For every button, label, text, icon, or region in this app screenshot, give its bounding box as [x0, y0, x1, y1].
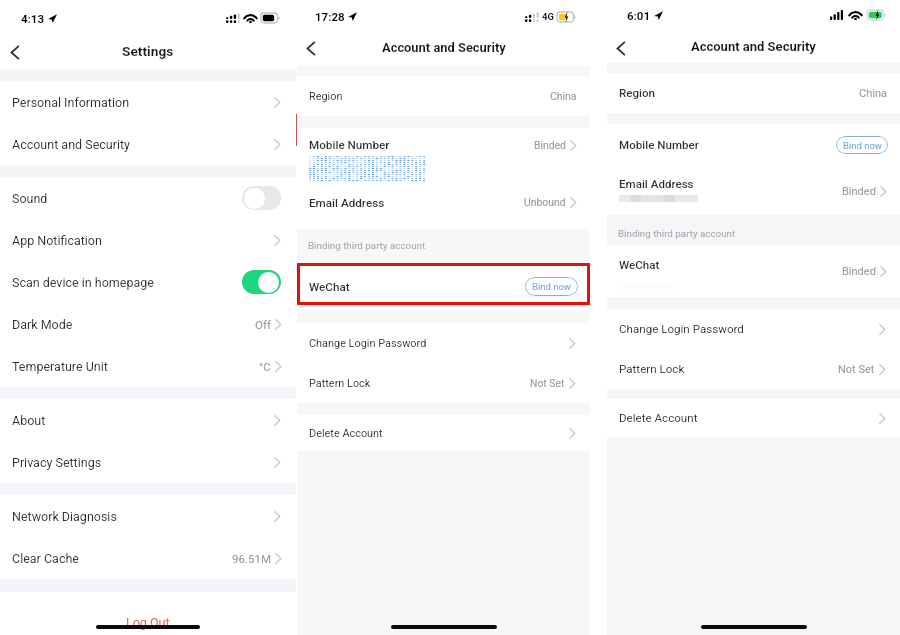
- staticText: Account and Security: [691, 39, 816, 54]
- button[interactable]: Network Diagnosis: [0, 495, 296, 537]
- button[interactable]: Region: [297, 76, 590, 116]
- staticText: °C: [259, 360, 271, 373]
- button[interactable]: Delete Account: [607, 399, 900, 437]
- button[interactable]: Delete Account: [297, 415, 590, 451]
- staticText: Pattern Lock: [309, 377, 371, 390]
- staticText: Email Address: [619, 177, 694, 191]
- staticText: Temperature Unit: [12, 359, 108, 374]
- button[interactable]: App Notification: [0, 219, 296, 261]
- staticText: 4:13: [21, 12, 45, 25]
- staticText: 4G: [542, 11, 554, 22]
- button[interactable]: Clear Cache: [0, 537, 296, 579]
- staticText: Region: [619, 86, 656, 100]
- button[interactable]: Log Out: [118, 612, 178, 633]
- staticText: Change Login Password: [619, 322, 744, 336]
- staticText: Pattern Lock: [619, 362, 685, 376]
- staticText: Binding third party account: [308, 240, 426, 251]
- button[interactable]: About: [0, 399, 296, 441]
- staticText: Binded: [842, 185, 876, 198]
- staticText: Region: [309, 90, 343, 103]
- button[interactable]: Bind now: [836, 136, 888, 154]
- staticText: Privacy Settings: [12, 455, 102, 470]
- button[interactable]: Back: [298, 35, 324, 61]
- staticText: Account and Security: [12, 137, 130, 152]
- button[interactable]: Change Login Password: [607, 309, 900, 349]
- staticText: App Notification: [12, 233, 102, 248]
- staticText: Bind now: [843, 140, 882, 151]
- staticText: Not Set: [530, 377, 565, 389]
- staticText: Binded: [534, 139, 566, 151]
- button[interactable]: Mobile Number: [607, 124, 900, 165]
- staticText: Not Set: [838, 363, 875, 376]
- staticText: Unbound: [524, 196, 566, 208]
- staticText: Off: [255, 318, 271, 331]
- staticText: Account and Security: [382, 40, 506, 55]
- staticText: Bind now: [532, 281, 571, 292]
- button[interactable]: Email Address: [607, 165, 900, 215]
- staticText: Delete Account: [619, 411, 698, 425]
- staticText: 17:28: [315, 10, 345, 23]
- button[interactable]: Dark Mode: [0, 303, 296, 345]
- staticText: 96.51M: [232, 552, 271, 565]
- button[interactable]: Account and Security: [0, 123, 296, 165]
- staticText: Log Out: [126, 615, 170, 630]
- staticText: Sound: [12, 191, 48, 206]
- staticText: China: [859, 87, 887, 100]
- staticText: Binded: [842, 265, 876, 278]
- button[interactable]: Personal Information: [0, 81, 296, 123]
- button[interactable]: Switch on: [242, 270, 281, 294]
- staticText: Personal Information: [12, 95, 130, 110]
- button[interactable]: Back: [2, 39, 28, 65]
- staticText: Mobile Number: [309, 138, 390, 152]
- staticText: Dark Mode: [12, 317, 73, 332]
- staticText: Network Diagnosis: [12, 509, 117, 524]
- button[interactable]: WeChat: [297, 262, 590, 311]
- staticText: Delete Account: [309, 427, 383, 440]
- button[interactable]: Bind now: [525, 277, 578, 296]
- button[interactable]: Back: [608, 35, 634, 61]
- staticText: 6:01: [627, 9, 651, 22]
- button[interactable]: Mobile Number: [297, 128, 590, 183]
- staticText: About: [12, 413, 46, 428]
- button[interactable]: Privacy Settings: [0, 441, 296, 483]
- staticText: WeChat: [619, 258, 660, 272]
- staticText: Clear Cache: [12, 551, 79, 566]
- button[interactable]: Switch off: [242, 186, 281, 210]
- staticText: China: [550, 90, 577, 102]
- button[interactable]: Email Address: [297, 183, 590, 229]
- button[interactable]: Scan device in homepage: [0, 261, 296, 303]
- button[interactable]: Change Login Password: [297, 323, 590, 363]
- staticText: Mobile Number: [619, 138, 699, 152]
- staticText: Scan device in homepage: [12, 275, 154, 290]
- button[interactable]: Pattern Lock: [607, 349, 900, 389]
- button[interactable]: Sound: [0, 177, 296, 219]
- button[interactable]: WeChat: [607, 245, 900, 297]
- staticText: Change Login Password: [309, 337, 427, 350]
- button[interactable]: Region: [607, 73, 900, 113]
- staticText: Settings: [122, 43, 174, 59]
- button[interactable]: Temperature Unit: [0, 345, 296, 387]
- staticText: Email Address: [309, 196, 385, 210]
- staticText: Binding third party account: [618, 228, 736, 239]
- button[interactable]: Pattern Lock: [297, 363, 590, 403]
- staticText: WeChat: [309, 280, 350, 294]
